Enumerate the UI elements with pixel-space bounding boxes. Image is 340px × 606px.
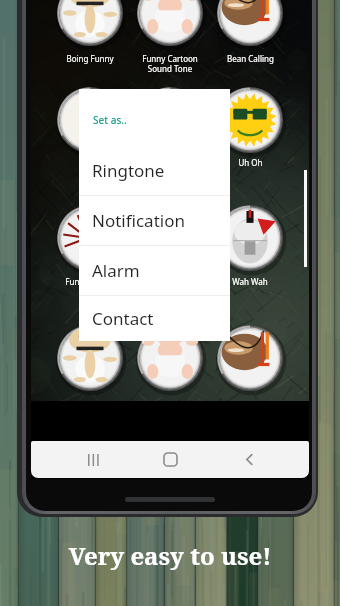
button[interactable]: Funny Laugh: [126, 252, 214, 300]
staticText: Boing Funny: [66, 53, 114, 64]
button[interactable]: Contact: [79, 296, 230, 341]
button[interactable]: Bean Calling: [206, 29, 294, 77]
staticText: Bean Calling: [227, 53, 274, 64]
staticText: Funny Cartoon Sound Tone: [142, 53, 198, 75]
button[interactable]: Funny Santa: [126, 133, 214, 181]
staticText: Darts: [80, 157, 101, 168]
staticText: Set as..: [93, 113, 127, 127]
staticText: Funny Spider: [65, 276, 115, 287]
button[interactable]: Darts: [46, 133, 134, 181]
button[interactable]: Wah Wah: [206, 252, 294, 300]
button[interactable]: Alarm: [79, 246, 230, 295]
staticText: Wah Wah: [232, 276, 268, 287]
button[interactable]: Home: [125, 441, 215, 478]
button[interactable]: Funny Spider: [46, 252, 134, 300]
button[interactable]: Recents: [48, 441, 138, 478]
button[interactable]: Uh Oh: [206, 133, 294, 181]
button[interactable]: Notification: [79, 196, 230, 245]
staticText: Ringtone: [92, 159, 165, 182]
button[interactable]: Ringtone: [79, 146, 230, 195]
button[interactable]: Back: [204, 441, 294, 478]
button[interactable]: Funny Cartoon Sound Tone: [126, 29, 214, 77]
staticText: Notification: [92, 209, 185, 232]
staticText: Very easy to use!: [0, 539, 340, 572]
staticText: Uh Oh: [238, 157, 263, 168]
staticText: Contact: [92, 307, 154, 330]
staticText: Alarm: [92, 259, 140, 282]
button[interactable]: Boing Funny: [46, 29, 134, 77]
